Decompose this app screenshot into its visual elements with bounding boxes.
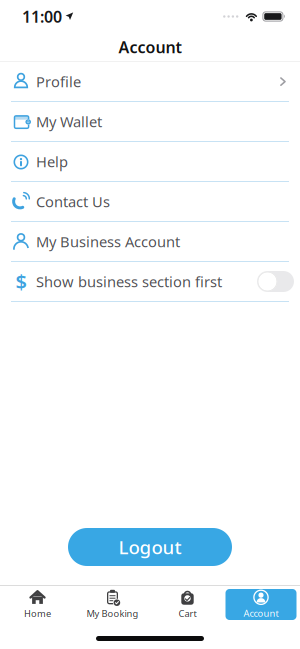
button[interactable]: My Wallet xyxy=(0,102,300,142)
staticText: Profile xyxy=(36,72,81,91)
button[interactable]: My Booking xyxy=(75,586,150,626)
button[interactable]: Cart xyxy=(150,586,225,626)
staticText: Help xyxy=(36,152,68,171)
staticText: 11:00 xyxy=(22,6,62,27)
button[interactable]: Contact Us xyxy=(0,182,300,222)
staticText: Show business section first xyxy=(36,272,222,291)
button[interactable]: Home xyxy=(0,586,75,626)
staticText: Contact Us xyxy=(36,192,110,211)
staticText: Cart xyxy=(178,607,196,620)
staticText: Account xyxy=(243,607,278,619)
staticText: Home xyxy=(24,607,51,620)
staticText: My Business Account xyxy=(36,232,180,251)
button[interactable]: Show business section first xyxy=(257,271,294,292)
staticText: Logout xyxy=(118,535,181,559)
button[interactable]: Help xyxy=(0,142,300,182)
button[interactable]: Profile xyxy=(0,62,300,102)
button[interactable]: Account xyxy=(225,586,300,626)
staticText: My Booking xyxy=(86,607,138,620)
button[interactable]: Logout xyxy=(68,528,232,566)
button[interactable]: My Business Account xyxy=(0,222,300,262)
staticText: $ xyxy=(15,268,26,295)
staticText: My Wallet xyxy=(36,112,102,131)
staticText: Account xyxy=(118,36,181,58)
